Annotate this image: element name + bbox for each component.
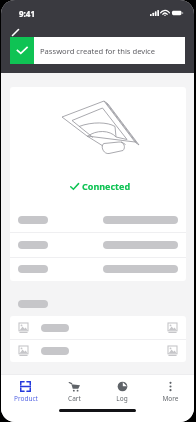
button[interactable] bbox=[10, 316, 186, 339]
staticText: More bbox=[162, 394, 179, 403]
staticText: 9:41 bbox=[19, 8, 35, 19]
staticText: Connected bbox=[82, 180, 131, 192]
button[interactable]: Log bbox=[98, 375, 146, 408]
button[interactable] bbox=[10, 257, 186, 281]
button[interactable]: Product bbox=[1, 375, 50, 408]
staticText: Password created for this device bbox=[40, 46, 156, 56]
button[interactable]: Cart bbox=[50, 375, 98, 408]
button[interactable] bbox=[10, 339, 186, 362]
button[interactable]: More bbox=[146, 375, 194, 408]
staticText: Product bbox=[14, 394, 38, 403]
button[interactable] bbox=[10, 208, 186, 232]
staticText: Log bbox=[116, 394, 128, 403]
staticText: Cart bbox=[68, 394, 81, 403]
button[interactable]: Password created for this device bbox=[10, 37, 185, 64]
button[interactable] bbox=[10, 232, 186, 257]
